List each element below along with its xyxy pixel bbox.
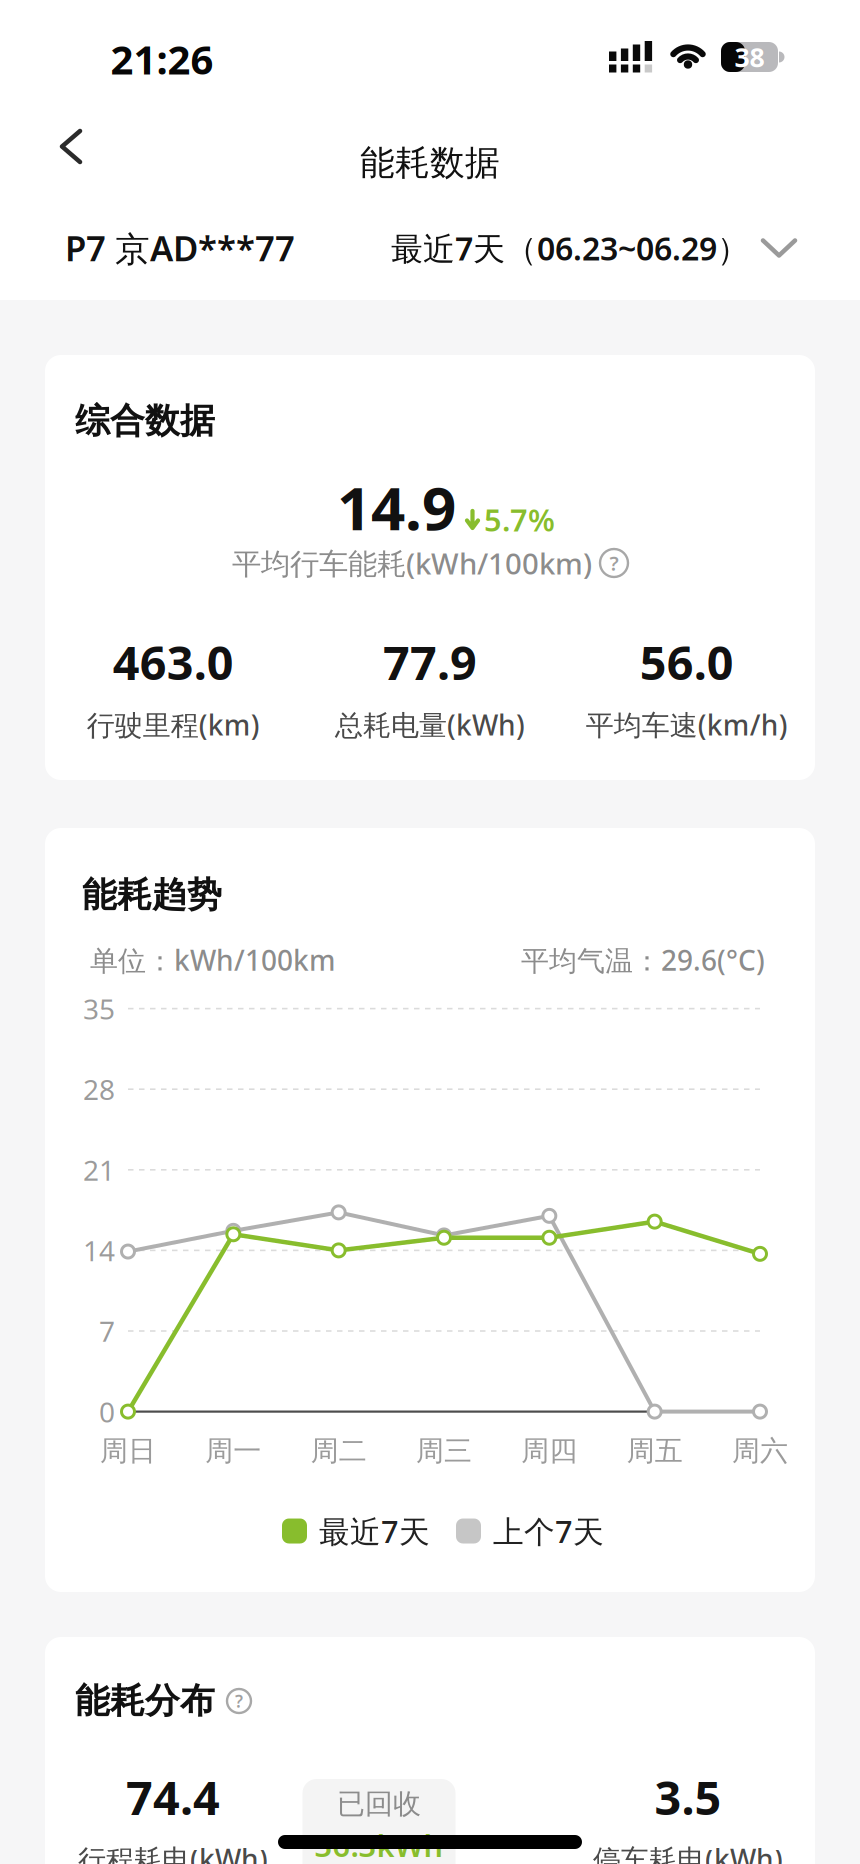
staticText: 77.9 [383,631,477,693]
staticText: 周五 [627,1434,683,1468]
staticText: 已回收 [337,1787,421,1821]
staticText: 能耗数据 [360,142,500,184]
staticText: 周六 [732,1434,788,1468]
staticText: 35 [83,990,115,1027]
staticText: 周四 [521,1434,577,1468]
staticText: 3.5 [654,1766,721,1828]
staticText: P7 京AD***77 [65,225,295,271]
button[interactable]: 选择时间范围 [391,227,796,269]
staticText: 平均车速(km/h) [586,706,788,743]
staticText: 463.0 [113,631,234,693]
button[interactable]: 返回 [0,100,111,193]
staticText: 56.0 [640,631,734,693]
staticText: 0 [99,1393,115,1430]
staticText: 14 [83,1232,115,1269]
staticText: ? [609,550,618,576]
staticText: 28 [83,1071,115,1108]
staticText: 14.9 [337,467,456,547]
staticText: 周三 [416,1434,472,1468]
button[interactable]: 能耗分布说明 [227,1689,251,1713]
staticText: 周二 [311,1434,367,1468]
staticText: 最近7天（06.23~06.29） [391,227,749,269]
staticText: 停车耗电(kWh) [593,1840,783,1864]
staticText: 上个7天 [493,1511,604,1551]
button[interactable]: 能耗说明 [600,549,628,577]
staticText: 21 [83,1151,115,1188]
staticText: 周日 [100,1434,156,1468]
staticText: 平均行车能耗(kWh/100km) [232,543,592,582]
staticText: 36.3kWh [314,1825,443,1864]
staticText: 38 [734,39,764,75]
staticText: 单位：kWh/100km [90,941,336,979]
staticText: 能耗分布 [75,1680,215,1722]
staticText: 7 [99,1312,115,1350]
staticText: 综合数据 [75,400,215,442]
staticText: 总耗电量(kWh) [335,706,525,743]
staticText: 5.7% [484,499,555,540]
staticText: ? [235,1689,243,1712]
staticText: 平均气温：29.6(°C) [521,941,765,979]
staticText: 74.4 [126,1766,220,1828]
staticText: 21:26 [110,32,213,85]
staticText: 能耗趋势 [82,874,222,916]
staticText: 最近7天 [319,1511,430,1551]
staticText: 周一 [205,1434,261,1468]
staticText: 行程耗电(kWh) [78,1840,268,1864]
staticText: 行驶里程(km) [87,706,260,743]
